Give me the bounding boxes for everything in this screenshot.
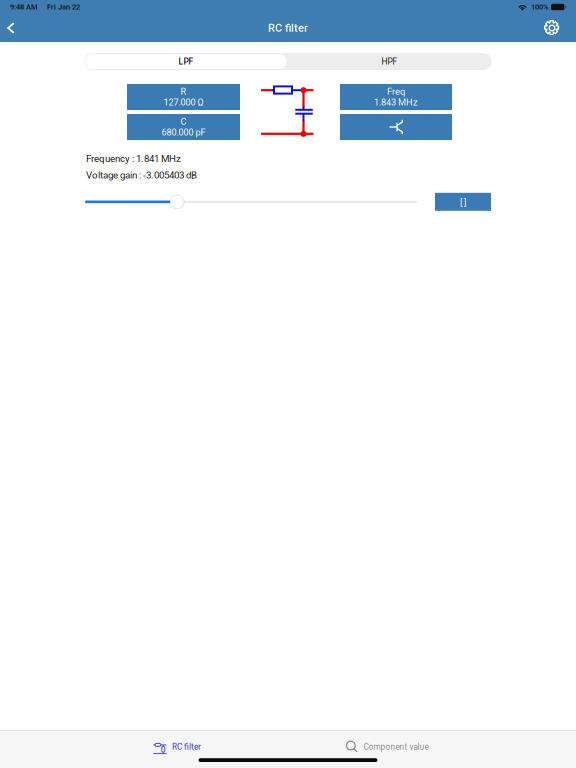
staticText: Component value xyxy=(363,742,428,752)
staticText: 9:48 AM xyxy=(10,3,38,11)
button[interactable]: LPF xyxy=(84,53,287,70)
staticText: LPF xyxy=(178,56,193,66)
staticText: Freq xyxy=(387,86,405,97)
staticText: RC filter xyxy=(172,742,201,752)
button[interactable]: C xyxy=(127,114,240,140)
staticText: R xyxy=(180,86,186,97)
staticText: Voltage gain : -3.005403 dB xyxy=(86,169,197,181)
button[interactable]: Freq xyxy=(340,84,452,110)
staticText: C xyxy=(180,116,186,127)
button[interactable]: RC filter xyxy=(117,734,237,760)
button[interactable]: HPF xyxy=(287,53,491,70)
staticText: 127.000 Ω xyxy=(163,97,203,108)
button[interactable]: Settings xyxy=(535,13,569,43)
button[interactable]: Transistor xyxy=(340,114,452,140)
staticText: HPF xyxy=(381,56,397,66)
staticText: RC filter xyxy=(268,22,308,34)
staticText: 100% xyxy=(531,3,548,11)
staticText: Frequency : 1.841 MHz xyxy=(86,153,181,164)
button[interactable]: Back xyxy=(0,13,22,43)
button[interactable]: Plot xyxy=(435,193,491,211)
staticText: 680.000 pF xyxy=(161,127,205,138)
button[interactable]: R xyxy=(127,84,240,110)
staticText: [ ] xyxy=(460,196,466,207)
staticText: Fri Jan 22 xyxy=(47,3,80,11)
staticText: 1.843 MHz xyxy=(374,97,418,108)
button[interactable]: Component value xyxy=(327,734,447,760)
